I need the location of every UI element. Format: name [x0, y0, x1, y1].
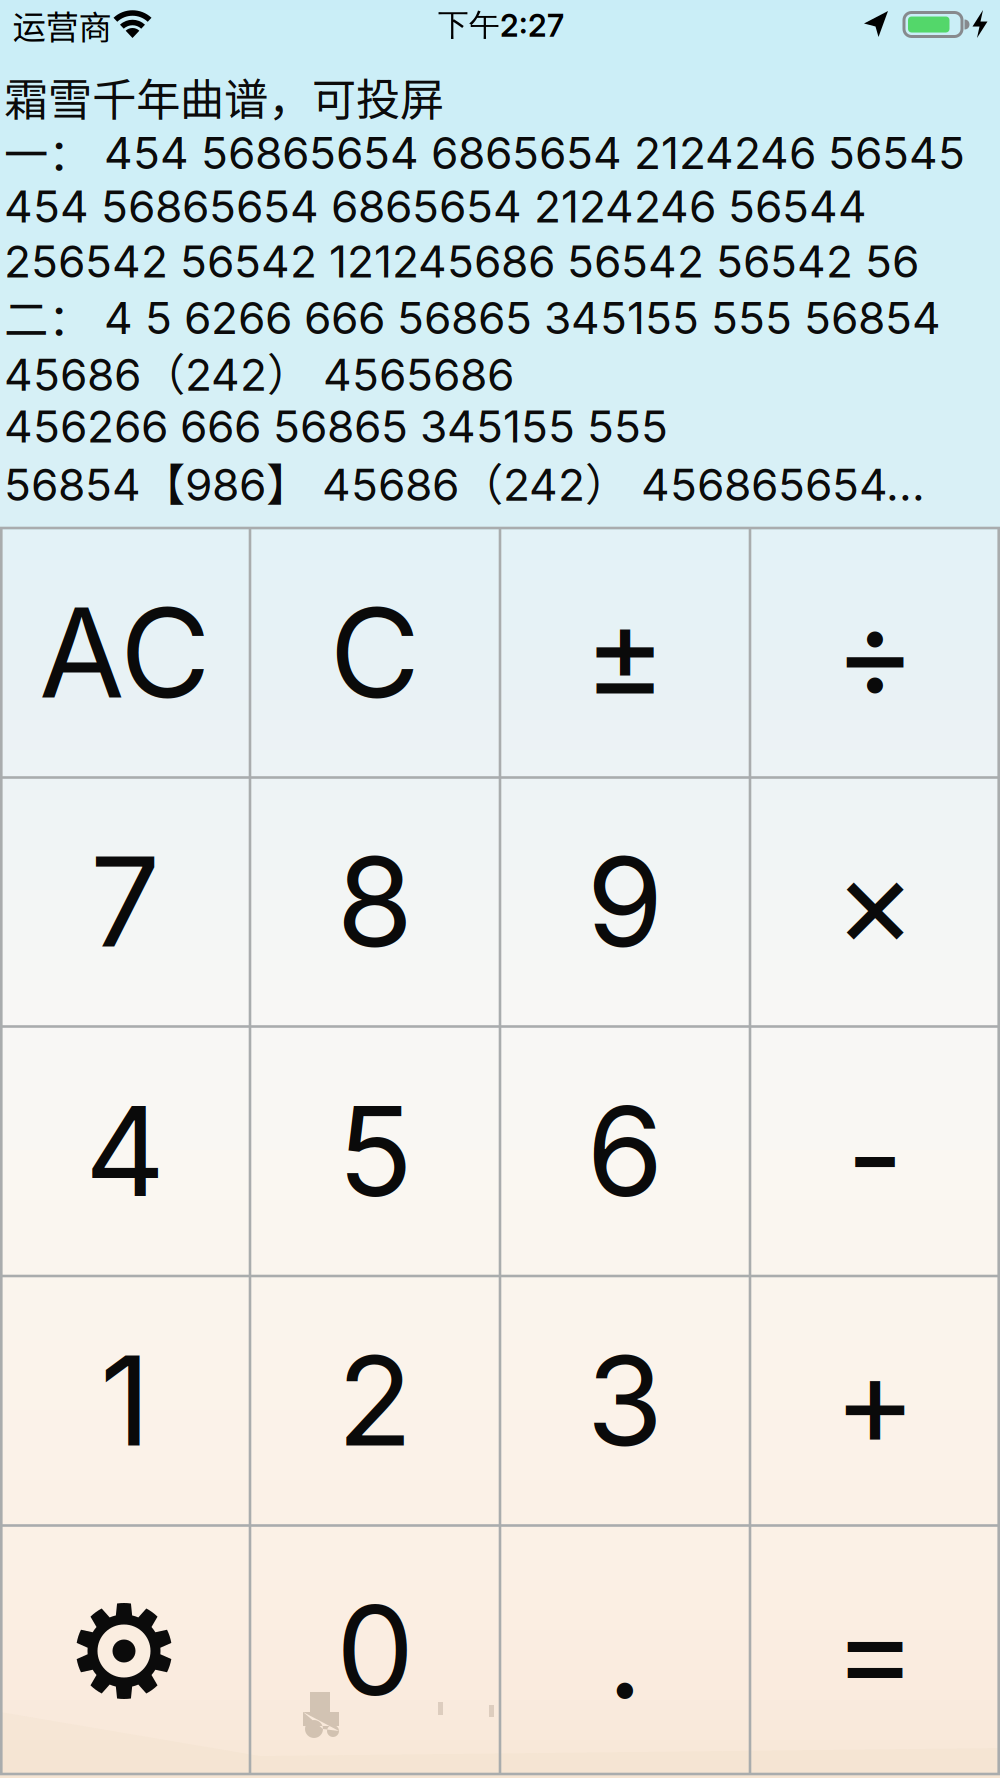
staticText: 7	[90, 826, 160, 976]
staticText: 6	[586, 1076, 663, 1226]
staticText: 2	[337, 1325, 413, 1475]
staticText: 8	[336, 826, 413, 976]
staticText: 5	[337, 1076, 412, 1226]
staticText: 下午2:27	[438, 6, 564, 44]
staticText: ÷	[834, 577, 916, 727]
staticText: 霜雪千年曲谱，可投屏	[4, 64, 444, 129]
staticText: ±	[584, 577, 666, 727]
staticText: 9	[586, 826, 663, 976]
staticText: 45686（242） 4565686	[4, 339, 514, 404]
staticText: C	[329, 577, 420, 727]
staticText: .	[607, 1578, 643, 1728]
staticText: =	[834, 1575, 916, 1725]
staticText: 0	[336, 1575, 414, 1725]
staticText: 运营商	[12, 1, 111, 49]
staticText: 一： 454 56865654 6865654 2124246 56545	[4, 119, 965, 184]
staticText: 56854【986】 45686（242） 456865654...	[4, 449, 925, 514]
staticText: AC	[39, 577, 211, 727]
staticText: 3	[586, 1325, 663, 1475]
staticText: +	[834, 1325, 916, 1475]
staticText: 二： 4 5 6266 666 56865 345155 555 56854	[4, 284, 941, 349]
staticText: 454 56865654 6865654 2124246 56544	[4, 180, 867, 233]
staticText: 456266 666 56865 345155 555	[4, 400, 668, 453]
staticText: 1	[100, 1325, 150, 1475]
staticText: -	[846, 1081, 903, 1231]
staticText: 4	[85, 1076, 165, 1226]
staticText: ×	[834, 826, 916, 976]
staticText: 256542 56542 121245686 56542 56542 56	[4, 235, 919, 288]
